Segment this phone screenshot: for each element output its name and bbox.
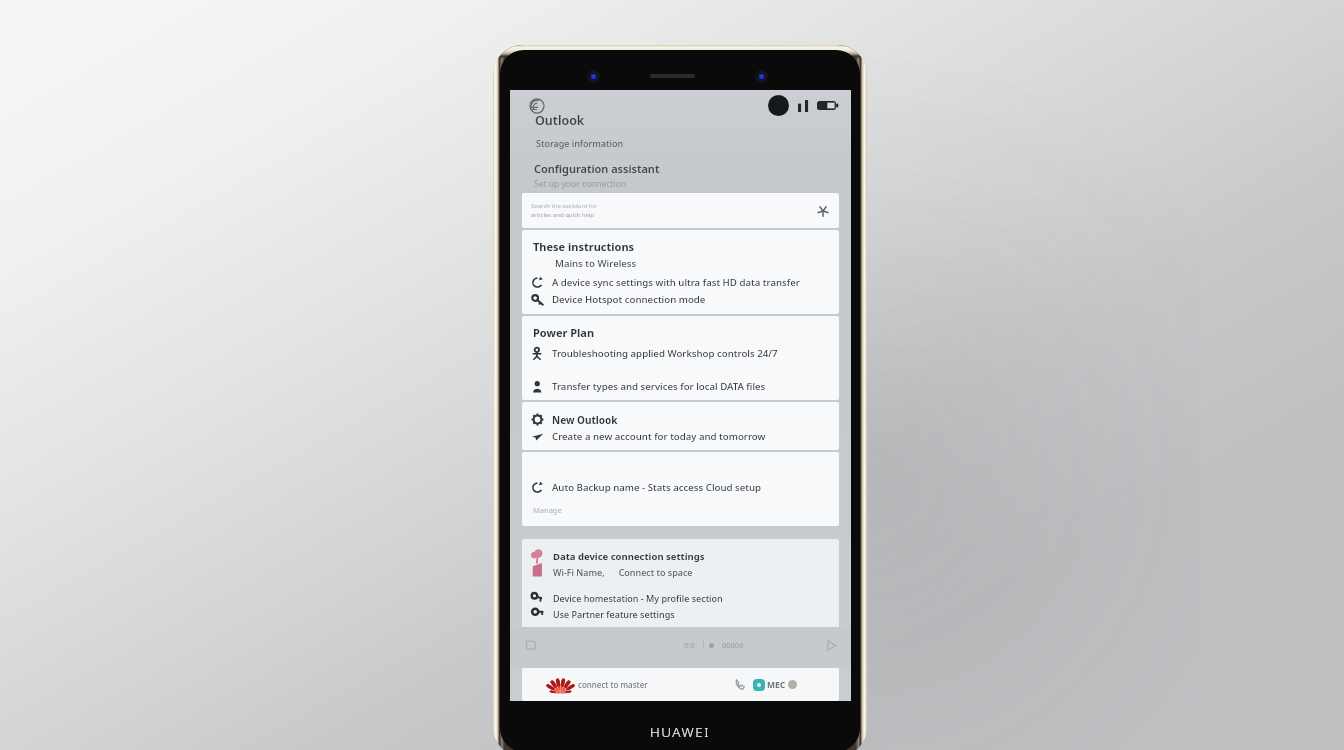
button[interactable]: Device Hotspot connection mode	[522, 291, 839, 308]
button[interactable]: Assistant	[817, 205, 829, 217]
button[interactable]: A device sync settings with ultra fast H…	[522, 274, 839, 291]
button[interactable]: New Outlook	[522, 411, 839, 428]
button[interactable]: Device connections	[522, 539, 839, 633]
button[interactable]: App menu	[529, 98, 545, 114]
staticText: Configuration assistant	[534, 161, 660, 176]
staticText: Manage	[533, 505, 562, 515]
staticText: A device sync settings with ultra fast H…	[552, 276, 800, 289]
staticText: connect to master	[578, 679, 648, 690]
button[interactable]: Create a new account for today and tomor…	[522, 428, 839, 445]
button[interactable]: MEC app	[753, 679, 765, 691]
staticText: Mains to Wireless	[555, 257, 637, 270]
button[interactable]: Recents	[525, 639, 538, 652]
staticText: These instructions	[533, 239, 635, 254]
button[interactable]: Search the assistant for	[522, 193, 839, 228]
staticText: articles and quick help	[531, 211, 595, 219]
button[interactable]: connect to master	[522, 668, 839, 701]
staticText: Search the assistant for	[531, 202, 598, 210]
staticText: MEC	[767, 679, 786, 691]
staticText: Wi-Fi Name, Connect to space	[553, 566, 693, 578]
staticText: Set up your connection	[534, 178, 627, 190]
staticText: Storage information	[536, 137, 624, 149]
button[interactable]: Auto Backup name - Stats access Cloud se…	[522, 479, 839, 496]
button[interactable]: Play	[825, 639, 838, 652]
staticText: New Outlook	[552, 413, 618, 427]
button[interactable]: Troubleshooting applied Workshop control…	[522, 345, 839, 362]
staticText: Use Partner feature settings	[553, 608, 675, 620]
staticText: Power Plan	[533, 325, 595, 340]
staticText: Device Hotspot connection mode	[552, 293, 706, 306]
staticText: Create a new account for today and tomor…	[552, 430, 766, 443]
button[interactable]: Transfer types and services for local DA…	[522, 378, 839, 395]
button[interactable]: Call	[735, 679, 746, 690]
staticText: Data device connection settings	[553, 550, 705, 563]
staticText: Device homestation - My profile section	[553, 592, 723, 604]
staticText: Outlook	[535, 112, 585, 129]
staticText: HUAWEI	[650, 723, 710, 741]
staticText: Transfer types and services for local DA…	[552, 380, 766, 393]
staticText: Troubleshooting applied Workshop control…	[552, 347, 778, 360]
staticText: Auto Backup name - Stats access Cloud se…	[552, 481, 762, 494]
staticText: 0:0	[684, 640, 695, 650]
staticText: 00000	[722, 640, 744, 650]
